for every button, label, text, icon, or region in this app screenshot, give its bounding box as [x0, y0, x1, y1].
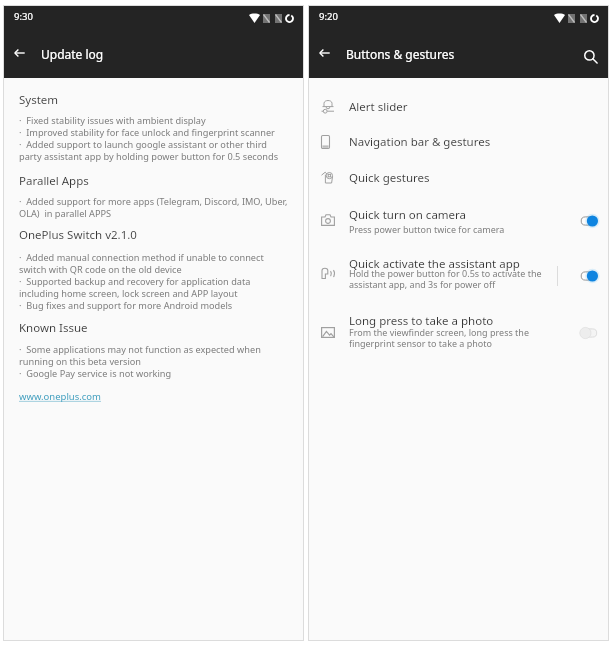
button[interactable]: Back — [312, 41, 336, 65]
staticText: From the viewfinder screen, long press t… — [349, 326, 529, 350]
staticText: 9:30 — [14, 10, 33, 23]
staticText: Buttons & gestures — [346, 46, 455, 62]
button[interactable]: On — [308, 201, 609, 241]
staticText: Known Issue — [19, 320, 88, 336]
staticText: OnePlus Switch v2.1.0 — [19, 227, 137, 243]
staticText: · Added support for more apps (Telegram,… — [19, 195, 288, 219]
staticText: Press power button twice for camera — [349, 223, 505, 235]
staticText: Parallel Apps — [19, 173, 89, 189]
button[interactable]: Alert slider — [308, 85, 609, 120]
staticText: Quick gestures — [349, 170, 430, 186]
staticText: Long press to take a photo — [349, 313, 494, 329]
button[interactable]: On — [572, 261, 606, 291]
staticText: Hold the power button for 0.5s to activa… — [349, 267, 542, 291]
button[interactable]: Off — [308, 307, 609, 359]
button[interactable]: Back — [7, 41, 31, 65]
button[interactable]: www.oneplus.com — [19, 390, 101, 403]
staticText: Navigation bar & gestures — [349, 134, 491, 150]
staticText: Quick activate the assistant app — [349, 256, 520, 272]
staticText: · Fixed stability issues with ambient di… — [19, 114, 279, 162]
staticText: System — [19, 92, 59, 108]
button[interactable]: On — [308, 250, 609, 302]
staticText: · Added manual connection method if unab… — [19, 251, 264, 311]
button[interactable]: Quick gestures — [308, 156, 609, 191]
staticText: Update log — [41, 46, 104, 62]
staticText: 9:20 — [319, 10, 338, 23]
button[interactable]: Off — [572, 318, 606, 348]
button[interactable]: Navigation bar & gestures — [308, 120, 609, 155]
staticText: · Some applications may not function as … — [19, 343, 261, 379]
staticText: Alert slider — [349, 99, 408, 115]
button[interactable]: Search — [579, 45, 603, 69]
button[interactable]: On — [572, 206, 606, 236]
staticText: Quick turn on camera — [349, 207, 467, 223]
